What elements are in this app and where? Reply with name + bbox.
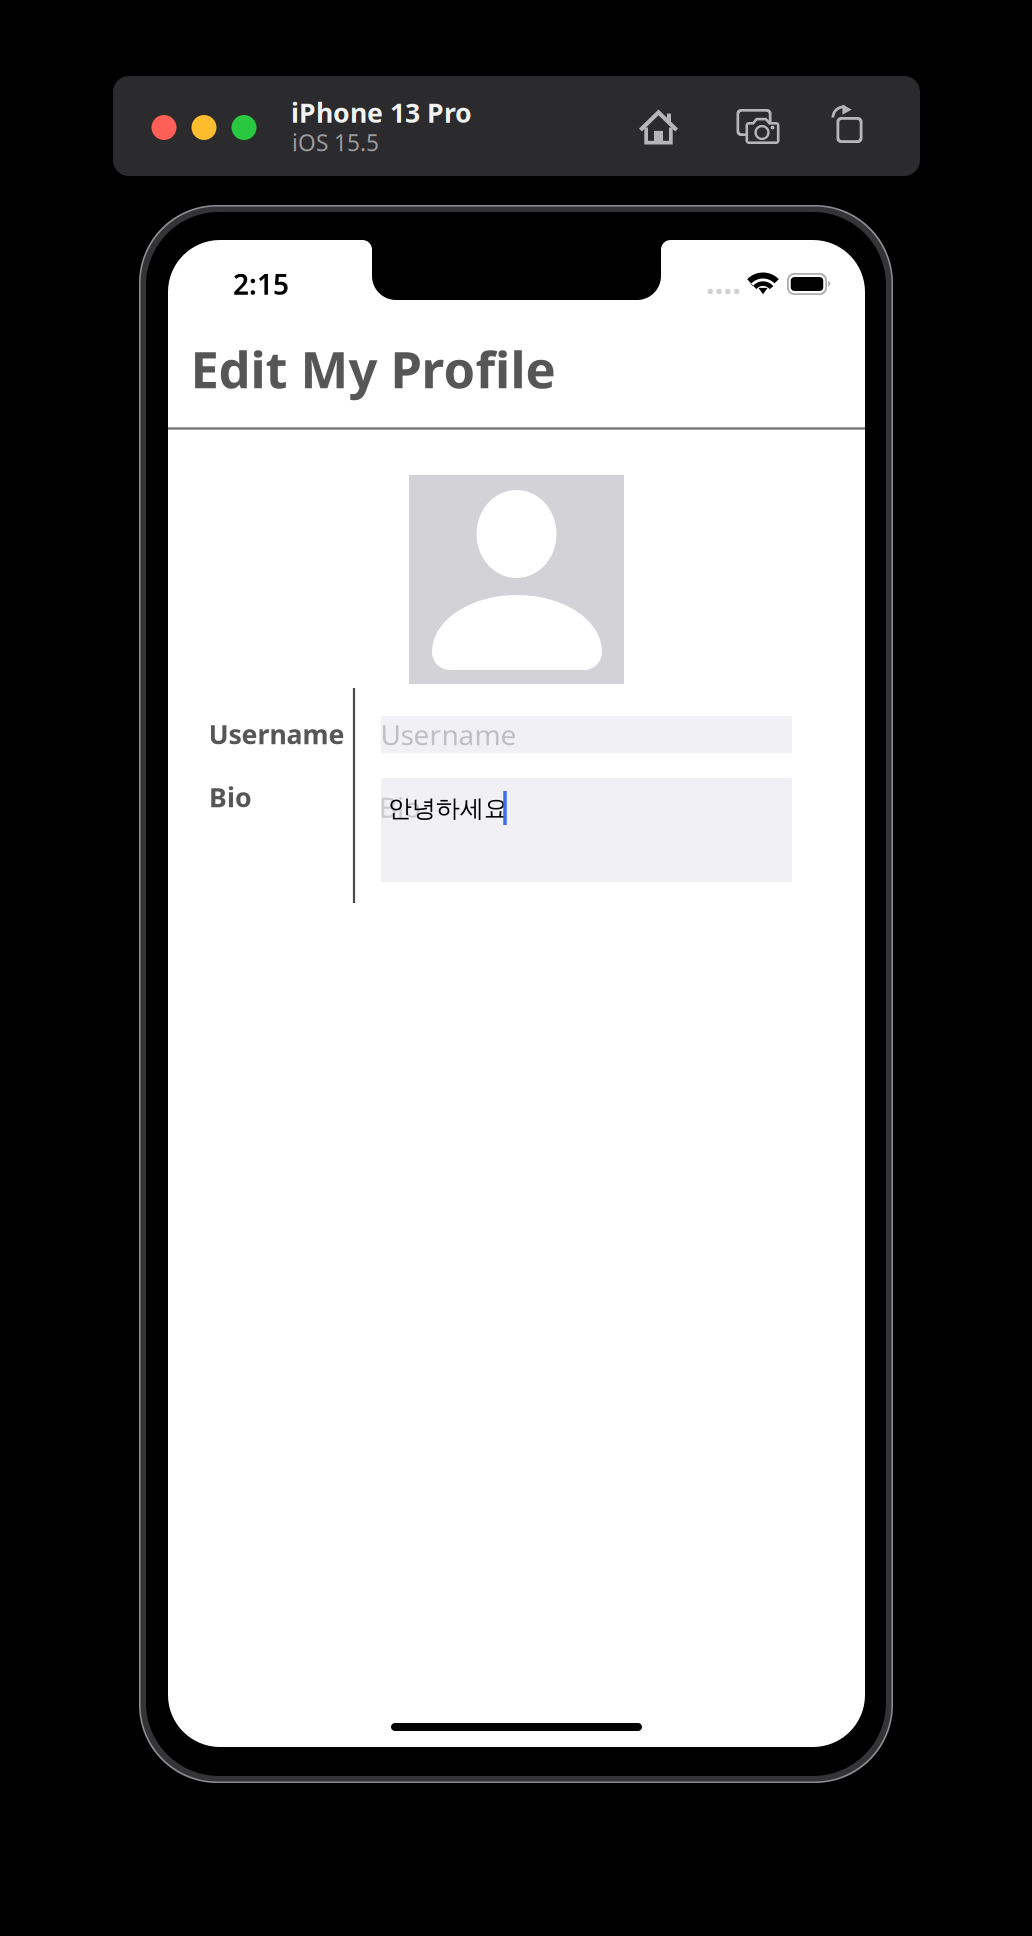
- staticText: iPhone 13 Pro: [291, 95, 472, 130]
- button[interactable]: Screenshot: [736, 109, 780, 145]
- button[interactable]: Rotate: [828, 104, 862, 143]
- staticText: Username: [208, 716, 344, 752]
- staticText: iOS 15.5: [292, 127, 379, 157]
- button[interactable]: Home: [639, 108, 678, 144]
- staticText: 2:15: [233, 265, 289, 303]
- staticText: Bio: [209, 779, 252, 815]
- staticText: Edit My Profile: [190, 335, 555, 402]
- staticText: Bio: [379, 788, 421, 826]
- staticText: Username: [380, 716, 516, 753]
- staticText: 안녕하세요: [388, 794, 508, 823]
